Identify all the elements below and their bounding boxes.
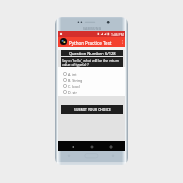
staticText: A. int <box>68 72 77 77</box>
staticText: Say x='hello', what will be the return v… <box>62 58 120 67</box>
staticText: B. String <box>68 78 83 83</box>
staticText: D. str <box>68 90 77 95</box>
button[interactable]: Recent apps <box>106 142 115 151</box>
staticText: 1:46 PM <box>111 32 124 37</box>
button[interactable]: B. String <box>63 77 119 83</box>
button[interactable]: Python Practice Test <box>58 37 125 47</box>
button[interactable]: C. bool <box>63 83 119 89</box>
button[interactable]: D. str <box>63 89 119 95</box>
staticText: SUBMIT YOUR CHOICE <box>74 108 111 112</box>
staticText: Python Practice Test <box>69 40 112 46</box>
button[interactable]: More options <box>120 37 125 47</box>
button[interactable]: SUBMIT YOUR CHOICE <box>61 105 123 114</box>
staticText: Question Number: 6/128 <box>69 51 116 56</box>
staticText: C. bool <box>68 84 80 89</box>
button[interactable]: A. int <box>63 71 119 77</box>
button[interactable]: Back <box>68 142 77 151</box>
staticText: SAMSUNG <box>83 26 102 31</box>
button[interactable]: Home <box>87 142 96 151</box>
